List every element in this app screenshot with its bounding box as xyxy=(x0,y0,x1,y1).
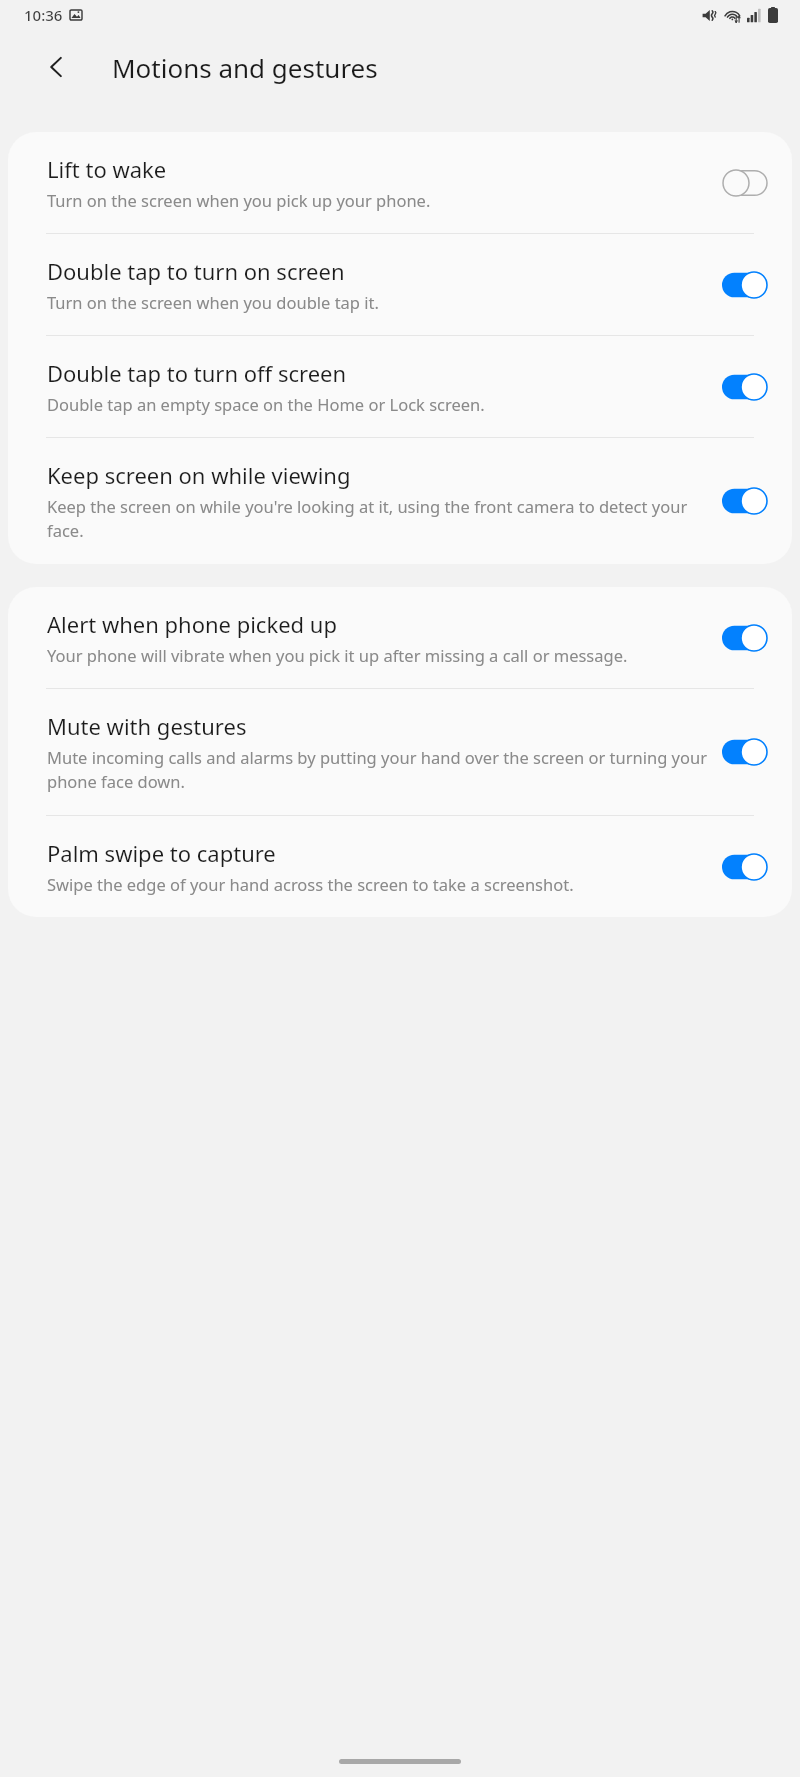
button[interactable]: Mute with gestures xyxy=(8,689,792,815)
staticText: Double tap to turn on screen xyxy=(47,256,345,286)
button[interactable]: Palm swipe to capture xyxy=(8,816,792,917)
button[interactable]: On xyxy=(722,271,768,299)
button[interactable]: On xyxy=(722,624,768,652)
staticText: Motions and gestures xyxy=(112,50,378,85)
staticText: Alert when phone picked up xyxy=(47,609,337,639)
staticText: Your phone will vibrate when you pick it… xyxy=(47,644,628,666)
staticText: Keep screen on while viewing xyxy=(47,460,351,490)
button[interactable]: On xyxy=(722,487,768,515)
button[interactable]: Double tap to turn off screen xyxy=(8,336,792,437)
button[interactable]: Keep screen on while viewing xyxy=(8,438,792,564)
button[interactable]: Alert when phone picked up xyxy=(8,587,792,688)
staticText: Double tap to turn off screen xyxy=(47,358,347,388)
button[interactable]: On xyxy=(722,738,768,766)
staticText: Mute with gestures xyxy=(47,711,247,741)
staticText: Turn on the screen when you pick up your… xyxy=(47,189,431,211)
button[interactable]: Double tap to turn on screen xyxy=(8,234,792,335)
staticText: Mute incoming calls and alarms by puttin… xyxy=(47,746,710,793)
staticText: Lift to wake xyxy=(47,154,167,184)
button[interactable]: On xyxy=(722,853,768,881)
button[interactable]: Back xyxy=(34,44,80,90)
staticText: Turn on the screen when you double tap i… xyxy=(47,291,379,313)
button[interactable]: Off xyxy=(722,169,768,197)
staticText: 10:36 xyxy=(24,5,63,25)
staticText: Double tap an empty space on the Home or… xyxy=(47,393,485,415)
button[interactable]: Lift to wake xyxy=(8,132,792,233)
staticText: Keep the screen on while you're looking … xyxy=(47,495,710,542)
staticText: Swipe the edge of your hand across the s… xyxy=(47,873,574,895)
button[interactable]: On xyxy=(722,373,768,401)
staticText: Palm swipe to capture xyxy=(47,838,276,868)
